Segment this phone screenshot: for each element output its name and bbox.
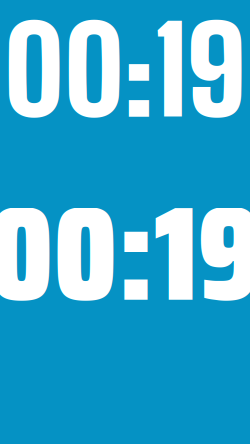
staticText: 00:19 [0, 150, 250, 358]
staticText: 00:19 [4, 0, 246, 142]
